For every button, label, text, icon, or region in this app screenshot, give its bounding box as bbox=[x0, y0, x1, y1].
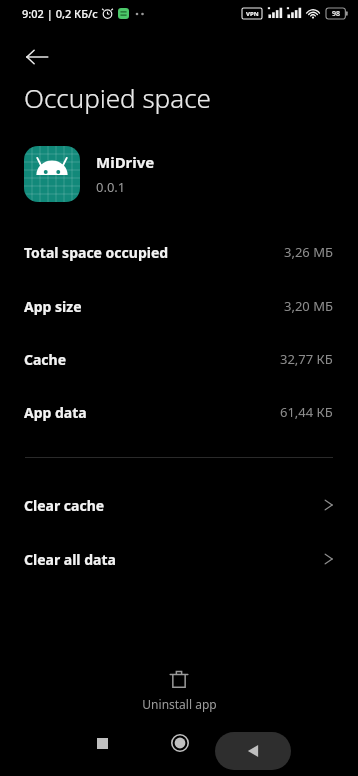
button[interactable]: Uninstall app bbox=[0, 668, 358, 712]
staticText: Total space occupied bbox=[24, 243, 169, 262]
staticText: 32,77 КБ bbox=[280, 350, 333, 368]
staticText: VPN bbox=[246, 10, 259, 18]
button[interactable]: App size bbox=[0, 286, 358, 326]
staticText: 0.0.1 bbox=[96, 178, 126, 196]
button[interactable]: App data bbox=[0, 392, 358, 432]
staticText: 3,20 МБ bbox=[284, 297, 333, 315]
staticText: 61,44 КБ bbox=[280, 403, 333, 421]
button[interactable]: Cache bbox=[0, 339, 358, 379]
staticText: Clear all data bbox=[24, 550, 116, 569]
staticText: MiDrive bbox=[96, 152, 155, 172]
staticText: App data bbox=[24, 403, 87, 422]
staticText: Clear cache bbox=[24, 496, 105, 515]
staticText: 9:02 | 0,2 КБ/с bbox=[22, 6, 98, 21]
button[interactable]: Home bbox=[158, 721, 202, 765]
button[interactable]: Clear all data bbox=[0, 537, 358, 581]
button[interactable]: Back bbox=[215, 732, 291, 770]
staticText: App size bbox=[24, 297, 82, 316]
button[interactable]: Back bbox=[14, 34, 60, 80]
staticText: 3,26 МБ bbox=[284, 243, 333, 261]
button[interactable]: Clear cache bbox=[0, 483, 358, 527]
button[interactable]: Recent apps bbox=[80, 721, 124, 765]
staticText: Occupied space bbox=[24, 80, 211, 115]
staticText: Cache bbox=[24, 350, 67, 369]
button[interactable]: Total space occupied bbox=[0, 232, 358, 272]
staticText: Uninstall app bbox=[142, 696, 217, 712]
staticText: 98 bbox=[332, 9, 341, 19]
